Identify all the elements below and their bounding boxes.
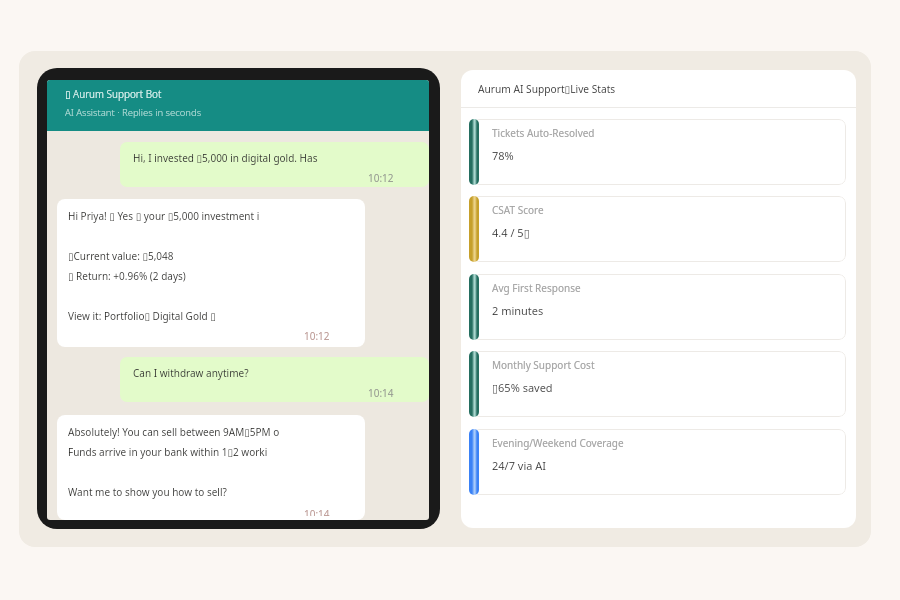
button[interactable]: Monthly Support Cost <box>469 351 843 417</box>
button[interactable]: Can I withdraw anytime? <box>120 357 429 402</box>
staticText: Tickets Auto-Resolved <box>492 126 595 140</box>
button[interactable]: ▯ Aurum Support Bot <box>47 80 429 131</box>
button[interactable]: CSAT Score <box>469 196 843 262</box>
staticText: AI Assistant · Replies in seconds <box>65 106 202 119</box>
staticText: Aurum AI Support▯Live Stats <box>478 82 616 96</box>
staticText: CSAT Score <box>492 203 544 217</box>
staticText: Can I withdraw anytime? <box>133 366 249 380</box>
staticText: 2 minutes <box>492 303 544 318</box>
staticText: Hi, I invested ▯5,000 in digital gold. H… <box>133 151 318 165</box>
staticText: ▯65% saved <box>492 380 553 395</box>
staticText: Absolutely! You can sell between 9AM▯5PM… <box>68 425 280 439</box>
staticText: 10:14 <box>304 507 330 516</box>
staticText: Monthly Support Cost <box>492 358 595 372</box>
staticText: Avg First Response <box>492 281 581 295</box>
staticText: Want me to show you how to sell? <box>68 485 227 499</box>
staticText: Hi Priya! ▯ Yes ▯ your ▯5,000 investment… <box>68 209 260 223</box>
staticText: ▯ Return: +0.96% (2 days) <box>68 269 186 283</box>
staticText: 10:12 <box>368 171 394 185</box>
staticText: ▯Current value: ▯5,048 <box>68 249 174 263</box>
other: Phone preview <box>37 68 440 529</box>
staticText: Funds arrive in your bank within 1▯2 wor… <box>68 445 268 459</box>
staticText: View it: Portfolio▯ Digital Gold ▯ <box>68 309 216 323</box>
staticText: ▯ Aurum Support Bot <box>65 87 162 101</box>
staticText: 10:14 <box>368 386 394 400</box>
button[interactable]: Hi, I invested ▯5,000 in digital gold. H… <box>120 142 429 187</box>
staticText: 4.4 / 5▯ <box>492 225 530 240</box>
staticText: 24/7 via AI <box>492 458 547 473</box>
button[interactable]: Hi Priya! ▯ Yes ▯ your ▯5,000 investment… <box>57 199 365 347</box>
staticText: Evening/Weekend Coverage <box>492 436 624 450</box>
button[interactable]: Avg First Response <box>469 274 843 340</box>
button[interactable]: Tickets Auto-Resolved <box>469 119 843 185</box>
button[interactable]: Aurum AI Support▯Live Stats <box>461 70 856 107</box>
button[interactable]: Absolutely! You can sell between 9AM▯5PM… <box>57 415 365 520</box>
staticText: 78% <box>492 148 514 163</box>
staticText: 10:12 <box>304 329 330 343</box>
button[interactable]: Evening/Weekend Coverage <box>469 429 843 495</box>
